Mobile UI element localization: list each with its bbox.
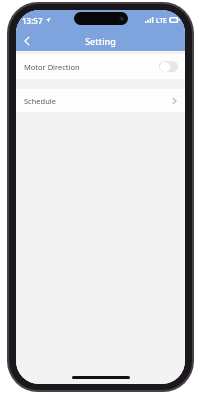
staticText: LTE <box>156 16 167 25</box>
staticText: Schedule <box>24 96 56 106</box>
staticText: Motor Direction <box>24 62 80 72</box>
staticText: 13:57 <box>22 15 43 26</box>
button[interactable]: Back <box>17 31 37 51</box>
button[interactable]: Motor Direction <box>16 54 185 79</box>
staticText: Setting <box>85 35 116 47</box>
button[interactable]: Schedule <box>16 89 185 112</box>
button[interactable]: Motor Direction <box>159 61 178 72</box>
